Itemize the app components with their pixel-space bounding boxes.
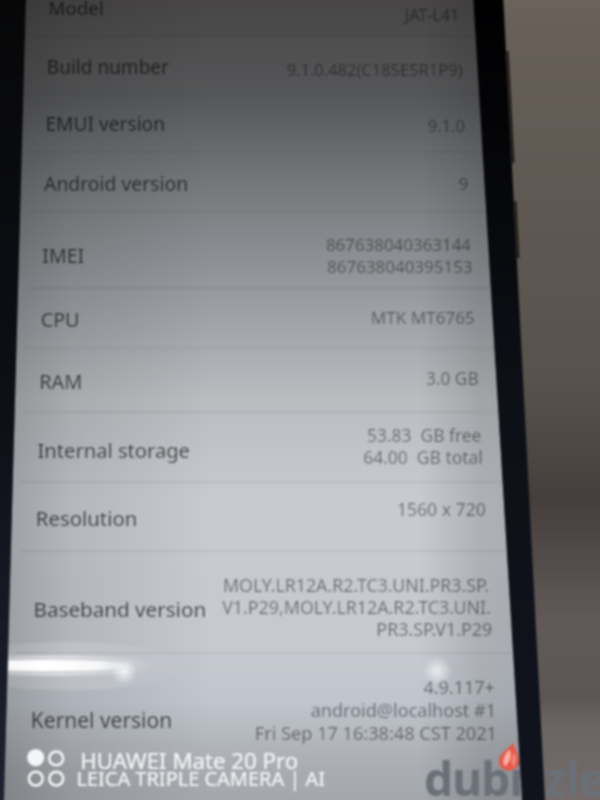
- button[interactable]: About phone – device information: [0, 0, 600, 800]
